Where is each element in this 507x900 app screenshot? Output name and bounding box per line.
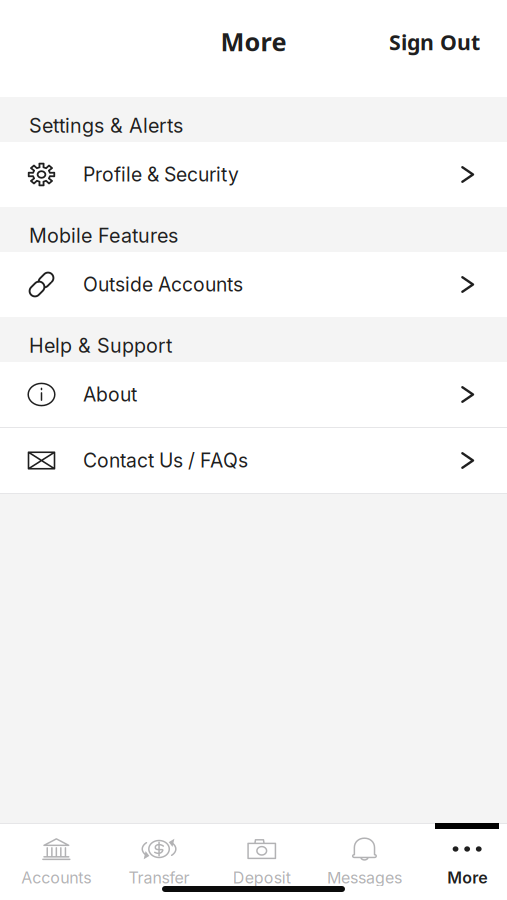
staticText: Accounts <box>21 868 91 887</box>
staticText: Deposit <box>233 868 291 887</box>
staticText: Profile & Security <box>83 163 239 186</box>
button[interactable]: Outside Accounts <box>0 252 507 317</box>
button[interactable]: Profile & Security <box>0 142 507 207</box>
button[interactable]: Accounts <box>5 829 108 886</box>
staticText: More <box>220 25 286 58</box>
staticText: About <box>83 383 137 406</box>
button[interactable]: More <box>416 829 507 886</box>
button[interactable]: Deposit <box>210 829 313 886</box>
staticText: Settings & Alerts <box>29 114 183 137</box>
staticText: More <box>447 868 487 887</box>
staticText: Contact Us / FAQs <box>83 449 248 472</box>
staticText: Mobile Features <box>29 224 178 247</box>
button[interactable]: About <box>0 362 507 427</box>
staticText: Help & Support <box>29 334 172 357</box>
button[interactable]: Sign Out <box>376 18 493 66</box>
button[interactable]: Contact Us / FAQs <box>0 428 507 493</box>
staticText: Messages <box>327 868 402 887</box>
staticText: Transfer <box>129 868 190 887</box>
button[interactable]: Transfer <box>108 829 210 886</box>
button[interactable]: Messages <box>313 829 416 886</box>
staticText: Outside Accounts <box>83 273 243 296</box>
staticText: Sign Out <box>389 28 480 56</box>
